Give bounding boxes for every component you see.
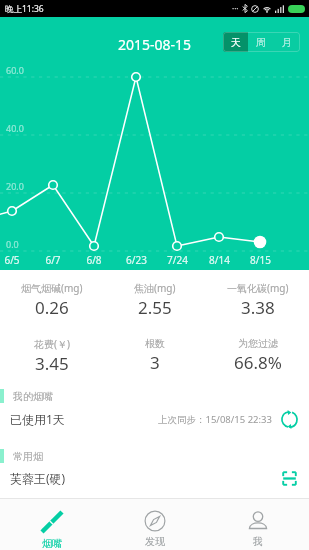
button[interactable]: 发现 xyxy=(103,499,206,550)
staticText: 2015-08-15 xyxy=(0,35,309,54)
staticText: 6/7 xyxy=(45,253,61,267)
staticText: 60.0 xyxy=(6,64,24,76)
staticText: 晚上11:36 xyxy=(5,3,44,15)
staticText: 我 xyxy=(253,535,263,548)
button[interactable]: 天 xyxy=(223,32,248,52)
staticText: 6/5 xyxy=(4,253,20,267)
staticText: 发现 xyxy=(145,535,165,548)
staticText: ··· xyxy=(232,3,239,14)
staticText: 40.0 xyxy=(6,122,24,134)
staticText: 焦油(mg) xyxy=(134,281,176,295)
staticText: 我的烟嘴 xyxy=(13,390,53,403)
button[interactable]: 周 xyxy=(248,32,274,52)
staticText: 芙蓉王(硬) xyxy=(10,470,66,486)
staticText: 一氧化碳(mg) xyxy=(227,281,289,295)
button[interactable]: 我 xyxy=(206,499,309,550)
staticText: 天 xyxy=(231,36,241,49)
button[interactable]: 月 xyxy=(274,32,300,52)
button[interactable]: 已使用1天 xyxy=(0,403,309,435)
staticText: 花费(￥) xyxy=(34,337,70,351)
staticText: 3 xyxy=(150,351,160,374)
staticText: 根数 xyxy=(145,337,165,350)
staticText: 烟嘴 xyxy=(42,537,62,550)
button[interactable]: 烟嘴 xyxy=(0,499,103,550)
staticText: 6/23 xyxy=(126,253,147,267)
staticText: 周 xyxy=(256,36,266,49)
staticText: 20.0 xyxy=(6,180,24,192)
staticText: 为您过滤 xyxy=(238,337,278,350)
staticText: 66.8% xyxy=(234,351,282,374)
staticText: 3.45 xyxy=(35,352,69,375)
staticText: 月 xyxy=(282,36,292,49)
staticText: 6/8 xyxy=(86,253,102,267)
staticText: 已使用1天 xyxy=(10,411,65,427)
staticText: 常用烟 xyxy=(13,450,43,463)
other: Sync xyxy=(280,410,299,429)
other: Scan xyxy=(281,470,298,487)
staticText: 8/14 xyxy=(209,253,230,267)
staticText: 8/15 xyxy=(250,253,271,267)
staticText: 烟气烟碱(mg) xyxy=(21,281,83,295)
staticText: 0.0 xyxy=(6,238,19,250)
staticText: 0.26 xyxy=(35,296,69,319)
staticText: 3.38 xyxy=(241,296,275,319)
staticText: 上次同步：15/08/15 22:33 xyxy=(158,413,272,426)
button[interactable]: 芙蓉王(硬) xyxy=(0,462,309,494)
staticText: 7/24 xyxy=(167,253,188,267)
staticText: 2.55 xyxy=(138,296,172,319)
